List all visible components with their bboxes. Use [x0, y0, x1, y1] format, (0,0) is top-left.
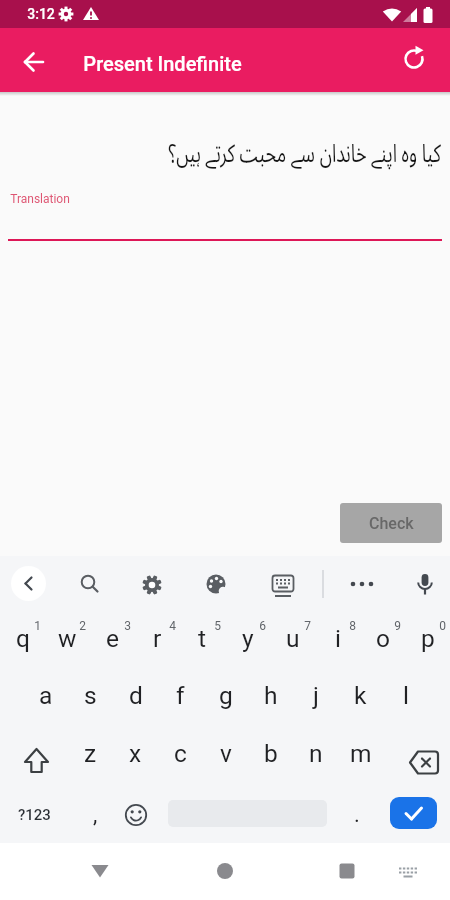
- button[interactable]: x: [113, 725, 158, 782]
- staticText: s: [84, 681, 97, 710]
- staticText: o: [376, 624, 390, 653]
- button[interactable]: h: [248, 667, 293, 724]
- button[interactable]: [194, 562, 238, 606]
- staticText: y: [242, 624, 254, 653]
- button[interactable]: [76, 847, 124, 895]
- staticText: Translation: [10, 192, 70, 206]
- staticText: u: [286, 624, 300, 653]
- button[interactable]: q: [0, 610, 45, 667]
- button[interactable]: [11, 566, 46, 601]
- staticText: v: [220, 739, 232, 768]
- staticText: c: [174, 739, 187, 768]
- staticText: t: [198, 624, 207, 653]
- staticText: 0: [439, 619, 446, 633]
- button[interactable]: i: [315, 610, 360, 667]
- staticText: x: [129, 739, 142, 768]
- button[interactable]: [323, 847, 371, 895]
- staticText: r: [153, 624, 162, 653]
- staticText: کیا وہ اپنے خاندان سے محبت کرتے ہیں؟: [168, 128, 441, 181]
- staticText: p: [421, 624, 435, 653]
- staticText: 3:12: [27, 6, 55, 22]
- staticText: Check: [369, 514, 414, 533]
- staticText: h: [264, 681, 278, 710]
- button[interactable]: j: [293, 667, 338, 724]
- staticText: q: [16, 624, 30, 653]
- staticText: b: [264, 739, 278, 768]
- staticText: 1: [34, 619, 41, 633]
- button[interactable]: t: [180, 610, 225, 667]
- staticText: 7: [304, 619, 311, 633]
- staticText: g: [219, 681, 233, 710]
- staticText: f: [176, 681, 185, 710]
- staticText: 5: [214, 619, 221, 633]
- staticText: ?123: [18, 806, 51, 824]
- button[interactable]: c: [158, 725, 203, 782]
- button[interactable]: [10, 38, 58, 86]
- button[interactable]: [130, 562, 174, 606]
- button[interactable]: u: [270, 610, 315, 667]
- staticText: a: [39, 681, 53, 710]
- staticText: n: [309, 739, 323, 768]
- button[interactable]: Check: [340, 503, 442, 543]
- staticText: i: [335, 624, 341, 653]
- staticText: 2: [79, 619, 86, 633]
- button[interactable]: .: [337, 786, 377, 843]
- staticText: w: [58, 624, 77, 653]
- staticText: z: [84, 739, 97, 768]
- staticText: .: [354, 802, 360, 828]
- button[interactable]: [383, 725, 450, 782]
- button[interactable]: [261, 562, 305, 606]
- button[interactable]: g: [203, 667, 248, 724]
- button[interactable]: r: [135, 610, 180, 667]
- button[interactable]: n: [293, 725, 338, 782]
- button[interactable]: ?123: [0, 786, 68, 843]
- button[interactable]: v: [203, 725, 248, 782]
- button[interactable]: [390, 797, 437, 829]
- button[interactable]: w: [45, 610, 90, 667]
- button[interactable]: [201, 847, 249, 895]
- button[interactable]: p: [405, 610, 450, 667]
- button[interactable]: d: [113, 667, 158, 724]
- button[interactable]: o: [360, 610, 405, 667]
- button[interactable]: l: [383, 667, 428, 724]
- button[interactable]: [340, 562, 384, 606]
- staticText: 3: [124, 619, 131, 633]
- staticText: m: [350, 739, 372, 768]
- button[interactable]: z: [68, 725, 113, 782]
- staticText: j: [313, 681, 319, 710]
- staticText: l: [403, 681, 409, 710]
- staticText: k: [354, 681, 367, 710]
- button[interactable]: a: [23, 667, 68, 724]
- staticText: Present Indefinite: [83, 52, 242, 75]
- button[interactable]: s: [68, 667, 113, 724]
- staticText: 9: [394, 619, 401, 633]
- staticText: 6: [259, 619, 266, 633]
- button[interactable]: [115, 786, 157, 843]
- button[interactable]: b: [248, 725, 293, 782]
- button[interactable]: [390, 35, 438, 83]
- button[interactable]: [403, 562, 447, 606]
- button[interactable]: y: [225, 610, 270, 667]
- staticText: 8: [349, 619, 356, 633]
- button[interactable]: m: [338, 725, 383, 782]
- button[interactable]: f: [158, 667, 203, 724]
- button[interactable]: [388, 851, 428, 891]
- button[interactable]: e: [90, 610, 135, 667]
- staticText: 4: [169, 619, 176, 633]
- button[interactable]: [68, 562, 112, 606]
- button[interactable]: [0, 725, 67, 782]
- button[interactable]: k: [338, 667, 383, 724]
- staticText: e: [106, 624, 119, 653]
- staticText: ,: [93, 802, 98, 828]
- button[interactable]: ,: [75, 786, 115, 843]
- staticText: d: [129, 681, 143, 710]
